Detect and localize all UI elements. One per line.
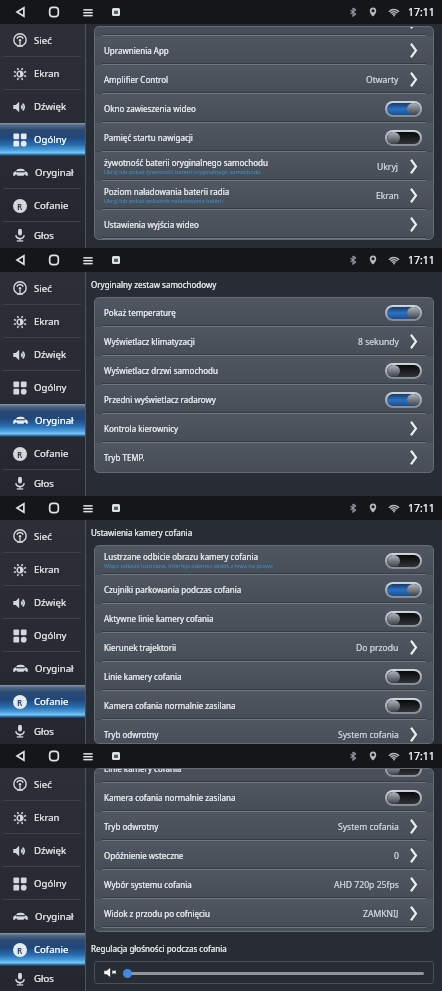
- button[interactable]: R: [0, 685, 86, 718]
- button[interactable]: żywotność baterii oryginalnego samochodu: [95, 152, 433, 181]
- button[interactable]: Pokaż temperaturę: [95, 298, 433, 327]
- button[interactable]: Switch off: [387, 613, 420, 625]
- button[interactable]: Switch off: [387, 132, 420, 144]
- button[interactable]: Oryginał: [0, 404, 86, 437]
- staticText: Czujniki parkowania podczas cofania: [104, 584, 242, 595]
- button[interactable]: Dźwięk: [0, 338, 86, 371]
- button[interactable]: Okno zawieszenia wideo: [95, 94, 433, 123]
- button[interactable]: R: [0, 189, 86, 222]
- button[interactable]: Głos: [0, 966, 86, 991]
- staticText: Ogólny: [34, 629, 67, 642]
- button[interactable]: Oryginał: [0, 900, 86, 933]
- button[interactable]: Recent apps: [79, 3, 97, 21]
- button[interactable]: Ogólny: [0, 371, 86, 404]
- staticText: Ukryj lub pokaż żywotność baterii orygin…: [104, 168, 261, 176]
- button[interactable]: Switch on: [387, 307, 420, 319]
- button[interactable]: Switch off: [387, 555, 420, 567]
- button[interactable]: Linie kamery cofania: [95, 662, 433, 691]
- button[interactable]: Switch off: [387, 365, 420, 377]
- button[interactable]: Amplifier Control: [95, 65, 433, 94]
- button[interactable]: Uprawnienia App: [95, 36, 433, 65]
- button[interactable]: Home: [45, 499, 63, 517]
- button[interactable]: Głos: [0, 222, 86, 248]
- button[interactable]: Głos: [0, 470, 86, 496]
- button[interactable]: Sieć: [0, 24, 86, 57]
- button[interactable]: Lustrzane odbicie obrazu kamery cofania: [95, 546, 433, 575]
- button[interactable]: Tryb odwrotny: [95, 812, 433, 841]
- staticText: Ekran: [376, 190, 399, 202]
- button[interactable]: Switch off: [387, 769, 420, 775]
- button[interactable]: Oryginał: [0, 652, 86, 685]
- button[interactable]: Aktywne linie kamery cofania: [95, 604, 433, 633]
- button[interactable]: Home: [45, 251, 63, 269]
- button[interactable]: Czujniki parkowania podczas cofania: [95, 575, 433, 604]
- button[interactable]: Oryginał: [0, 156, 86, 189]
- staticText: Aktywne linie kamery cofania: [104, 613, 214, 624]
- button[interactable]: Dźwięk: [0, 586, 86, 619]
- button[interactable]: Back: [12, 499, 30, 517]
- button[interactable]: Linie kamery cofania: [95, 769, 433, 783]
- button[interactable]: Switch off: [387, 792, 420, 804]
- button[interactable]: Switch on: [387, 584, 420, 596]
- button[interactable]: Back: [12, 747, 30, 765]
- button[interactable]: Switch off: [387, 671, 420, 683]
- staticText: 0: [394, 850, 399, 862]
- button[interactable]: Ekran: [0, 57, 86, 90]
- button[interactable]: Current app: [112, 752, 120, 760]
- button[interactable]: Back: [12, 3, 30, 21]
- button[interactable]: Kamera cofania normalnie zasilana: [95, 691, 433, 720]
- button[interactable]: Recent apps: [79, 251, 97, 269]
- button[interactable]: Switch on: [387, 394, 420, 406]
- button[interactable]: Kierunek trajektorii: [95, 633, 433, 662]
- button[interactable]: Tryb odwrotny: [95, 720, 433, 743]
- button[interactable]: Sieć: [0, 272, 86, 305]
- button[interactable]: Back: [12, 251, 30, 269]
- button[interactable]: Current app: [112, 504, 120, 512]
- button[interactable]: Pamięć startu nawigacji: [95, 123, 433, 152]
- button[interactable]: Reverse volume slider: [104, 961, 424, 984]
- staticText: Oryginał: [35, 166, 74, 179]
- staticText: Otwarty: [366, 74, 399, 86]
- button[interactable]: Recent apps: [79, 747, 97, 765]
- button[interactable]: Wyświetlacz klimatyzacji: [95, 327, 433, 356]
- button[interactable]: Kamera cofania normalnie zasilana: [95, 783, 433, 812]
- button[interactable]: Ekran: [0, 305, 86, 338]
- button[interactable]: Ogólny: [0, 123, 86, 156]
- button[interactable]: Sieć: [0, 768, 86, 801]
- button[interactable]: Dźwięk: [0, 834, 86, 867]
- button[interactable]: Ogólny: [0, 619, 86, 652]
- button[interactable]: Poziom naładowania baterii radia: [95, 181, 433, 210]
- button[interactable]: Home: [45, 747, 63, 765]
- button[interactable]: Switch on: [387, 103, 420, 115]
- staticText: Oryginał: [35, 414, 74, 427]
- button[interactable]: Poprzednia opcja: [95, 27, 433, 36]
- staticText: Dźwięk: [34, 100, 67, 113]
- button[interactable]: Switch off: [387, 700, 420, 712]
- button[interactable]: Widok z przodu po cofnięciu: [95, 899, 433, 928]
- button[interactable]: Recent apps: [79, 499, 97, 517]
- button[interactable]: R: [0, 933, 86, 966]
- staticText: 17:11: [408, 5, 435, 19]
- button[interactable]: Kontrola kierownicy: [95, 414, 433, 443]
- button[interactable]: Wyświetlacz drzwi samochodu: [95, 356, 433, 385]
- button[interactable]: Current app: [112, 256, 120, 264]
- staticText: Cofanie: [34, 943, 69, 956]
- button[interactable]: Wybór systemu cofania: [95, 870, 433, 899]
- button[interactable]: R: [0, 437, 86, 470]
- button[interactable]: Opóźnienie wsteczne: [95, 841, 433, 870]
- button[interactable]: Ogólny: [0, 867, 86, 900]
- button[interactable]: Ekran: [0, 553, 86, 586]
- button[interactable]: Tryb TEMP.: [95, 443, 433, 472]
- button[interactable]: Home: [45, 3, 63, 21]
- button[interactable]: Ekran: [0, 801, 86, 834]
- staticText: Ogólny: [34, 133, 67, 146]
- staticText: Sieć: [34, 778, 52, 791]
- button[interactable]: Ustawienia wyjścia wideo: [95, 210, 433, 239]
- button[interactable]: Przedni wyświetlacz radarowy: [95, 385, 433, 414]
- staticText: Dźwięk: [34, 348, 67, 361]
- button[interactable]: Dźwięk: [0, 90, 86, 123]
- button[interactable]: Sieć: [0, 520, 86, 553]
- button[interactable]: Current app: [112, 8, 120, 16]
- staticText: System cofania: [338, 729, 399, 741]
- button[interactable]: Głos: [0, 718, 86, 744]
